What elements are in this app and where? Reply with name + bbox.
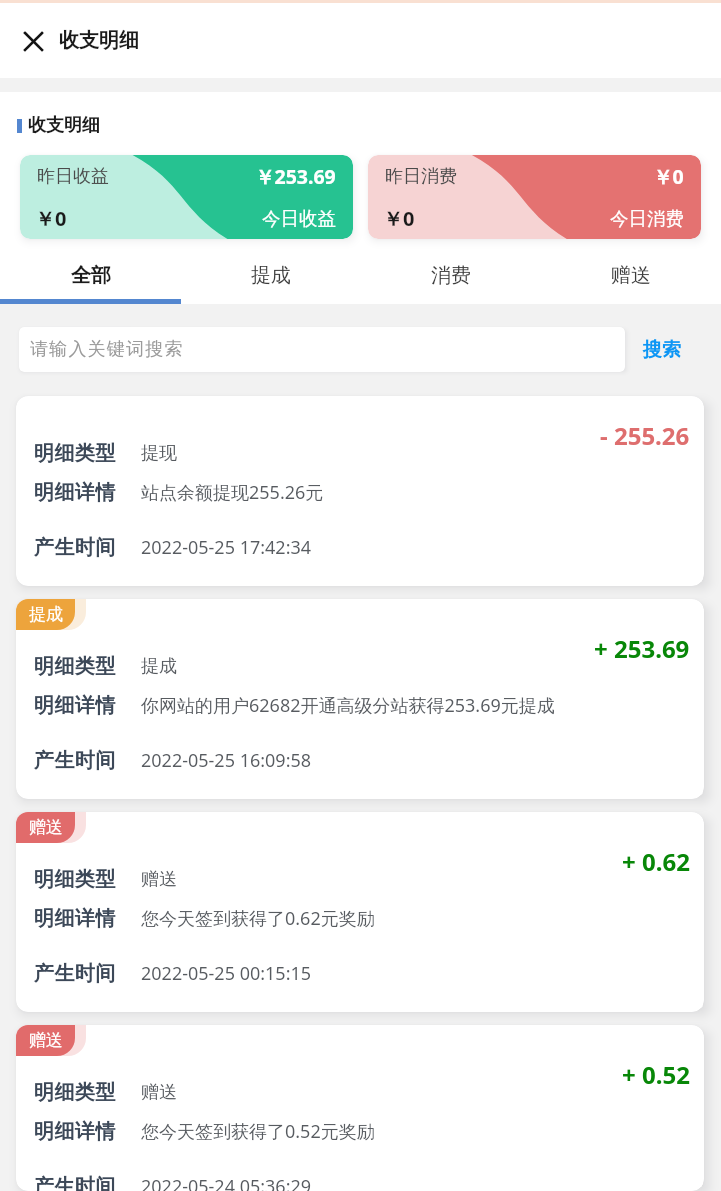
staticText: 2022-05-24 05:36:29 xyxy=(141,1174,312,1191)
staticText: 明细类型 xyxy=(34,654,120,679)
staticText: 明细类型 xyxy=(34,441,120,466)
staticText: 全部 xyxy=(71,263,111,288)
staticText: ￥0 xyxy=(35,205,67,232)
staticText: 赠送 xyxy=(29,1030,63,1051)
button[interactable]: 搜索 xyxy=(625,332,699,368)
staticText: 请输入关键词搜索 xyxy=(30,338,184,361)
button[interactable]: 昨日收益 xyxy=(20,155,353,239)
button[interactable]: + 0.62 xyxy=(16,812,704,1012)
button[interactable]: + 0.52 xyxy=(16,1025,704,1191)
staticText: 赠送 xyxy=(611,263,651,288)
staticText: 产生时间 xyxy=(34,748,120,773)
staticText: - 255.26 xyxy=(600,419,690,452)
button[interactable]: 消费 xyxy=(361,247,541,304)
staticText: 产生时间 xyxy=(34,535,120,560)
button[interactable]: 全部 xyxy=(0,247,181,304)
button[interactable]: 提成 xyxy=(181,247,361,304)
staticText: 昨日消费 xyxy=(385,165,457,188)
button[interactable]: + 253.69 xyxy=(16,599,704,799)
staticText: 赠送 xyxy=(29,817,63,838)
staticText: 收支明细 xyxy=(59,28,139,53)
staticText: 2022-05-25 16:09:58 xyxy=(141,748,312,773)
staticText: 提成 xyxy=(251,263,291,288)
button[interactable]: Close xyxy=(14,22,52,60)
staticText: 提成 xyxy=(141,655,177,678)
staticText: 提成 xyxy=(29,604,63,625)
button[interactable]: - 255.26 xyxy=(16,396,704,586)
staticText: 您今天签到获得了0.52元奖励 xyxy=(141,1119,375,1144)
button[interactable]: 请输入关键词搜索 xyxy=(19,327,625,372)
staticText: 2022-05-25 17:42:34 xyxy=(141,535,312,560)
staticText: 搜索 xyxy=(643,338,681,362)
staticText: 今日消费 xyxy=(610,207,684,230)
staticText: 产生时间 xyxy=(34,961,120,986)
staticText: 明细详情 xyxy=(34,480,120,505)
staticText: 消费 xyxy=(431,263,471,288)
staticText: + 0.52 xyxy=(622,1058,690,1091)
staticText: 你网站的用户62682开通高级分站获得253.69元提成 xyxy=(141,693,555,718)
staticText: 收支明细 xyxy=(28,114,100,137)
staticText: 明细详情 xyxy=(34,693,120,718)
staticText: ￥253.69 xyxy=(255,163,336,190)
staticText: + 0.62 xyxy=(622,845,690,878)
staticText: 明细类型 xyxy=(34,867,120,892)
staticText: 提现 xyxy=(141,442,177,465)
staticText: ￥0 xyxy=(653,163,684,190)
staticText: 今日收益 xyxy=(262,207,336,230)
staticText: 明细详情 xyxy=(34,1119,120,1144)
staticText: 您今天签到获得了0.62元奖励 xyxy=(141,906,375,931)
button[interactable]: 昨日消费 xyxy=(368,155,701,239)
staticText: 赠送 xyxy=(141,1081,177,1104)
staticText: 明细类型 xyxy=(34,1080,120,1105)
staticText: 赠送 xyxy=(141,868,177,891)
staticText: + 253.69 xyxy=(594,632,690,665)
staticText: 站点余额提现255.26元 xyxy=(141,480,324,505)
staticText: 昨日收益 xyxy=(37,165,109,188)
staticText: ￥0 xyxy=(383,205,415,232)
staticText: 2022-05-25 00:15:15 xyxy=(141,961,312,986)
staticText: 明细详情 xyxy=(34,906,120,931)
button[interactable]: 赠送 xyxy=(541,247,721,304)
staticText: 产生时间 xyxy=(34,1174,120,1191)
